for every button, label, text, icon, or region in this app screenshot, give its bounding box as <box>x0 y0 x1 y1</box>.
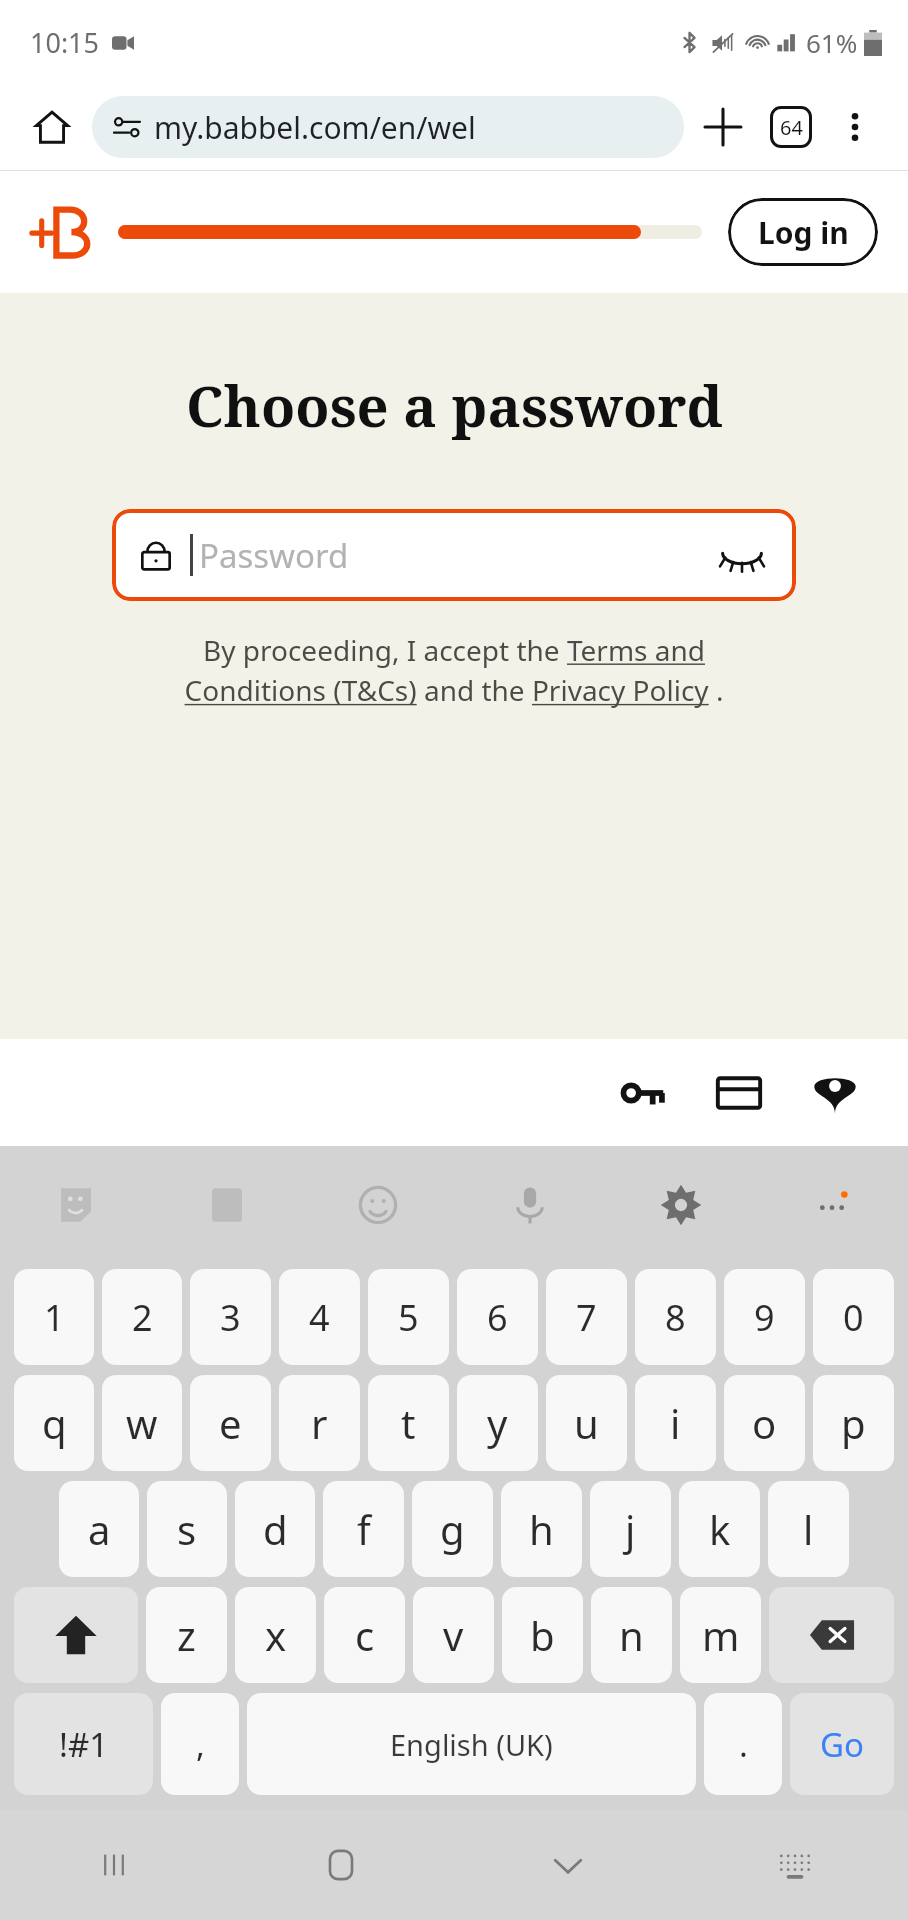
button[interactable]: 3 <box>190 1269 271 1365</box>
button[interactable]: GIF <box>191 1169 263 1241</box>
button[interactable]: l <box>768 1481 849 1577</box>
staticText: 7 <box>576 1293 597 1342</box>
button[interactable]: 9 <box>724 1269 805 1365</box>
button[interactable]: 8 <box>635 1269 716 1365</box>
staticText: . <box>739 1722 748 1767</box>
button[interactable]: 5 <box>368 1269 449 1365</box>
button[interactable]: New tab <box>692 96 754 158</box>
button[interactable]: Backspace <box>769 1587 894 1683</box>
staticText: m <box>702 1608 740 1662</box>
staticText: c <box>355 1608 375 1662</box>
staticText: v <box>443 1608 464 1662</box>
button[interactable]: a <box>59 1481 139 1577</box>
button[interactable]: 1 <box>14 1269 94 1365</box>
button[interactable]: e <box>190 1375 271 1471</box>
staticText: n <box>619 1608 644 1662</box>
button[interactable]: 7 <box>546 1269 627 1365</box>
staticText: l <box>803 1502 814 1556</box>
button[interactable]: m <box>680 1587 761 1683</box>
button[interactable]: j <box>590 1481 671 1577</box>
button[interactable]: Switch keyboard <box>681 1810 908 1920</box>
staticText: u <box>574 1396 599 1450</box>
button[interactable]: Recent apps <box>0 1810 227 1920</box>
staticText: w <box>126 1396 158 1450</box>
staticText: x <box>265 1608 287 1662</box>
staticText: !#1 <box>59 1722 109 1767</box>
staticText: r <box>311 1396 328 1450</box>
button[interactable]: g <box>412 1481 493 1577</box>
button[interactable]: Show password <box>714 527 770 583</box>
staticText: e <box>219 1396 242 1450</box>
staticText: z <box>177 1608 196 1662</box>
staticText: q <box>42 1396 67 1450</box>
button[interactable]: Voice input <box>494 1169 566 1241</box>
button[interactable]: English (UK) <box>247 1693 696 1795</box>
button[interactable]: s <box>147 1481 227 1577</box>
staticText: Go <box>820 1722 864 1767</box>
button[interactable]: h <box>501 1481 582 1577</box>
button[interactable]: f <box>323 1481 404 1577</box>
button[interactable]: . <box>704 1693 782 1795</box>
button[interactable]: v <box>413 1587 494 1683</box>
button[interactable]: x <box>235 1587 316 1683</box>
staticText: k <box>709 1502 731 1556</box>
button[interactable]: Emoji <box>342 1169 414 1241</box>
button[interactable]: p <box>813 1375 894 1471</box>
staticText: t <box>401 1396 416 1450</box>
button[interactable]: Home <box>227 1810 454 1920</box>
button[interactable]: my.babbel.com/en/wel <box>92 96 684 158</box>
button[interactable]: u <box>546 1375 627 1471</box>
staticText: 6 <box>487 1293 508 1342</box>
button[interactable]: More <box>796 1169 868 1241</box>
button[interactable]: q <box>14 1375 94 1471</box>
staticText: 4 <box>309 1293 330 1342</box>
button[interactable]: Addresses <box>792 1050 878 1136</box>
button[interactable]: Stickers <box>40 1169 112 1241</box>
button[interactable]: By proceeding, I accept the Terms and Co… <box>150 631 758 710</box>
button[interactable]: Home <box>24 99 80 155</box>
staticText: d <box>263 1502 288 1556</box>
button[interactable]: Passwords <box>600 1050 686 1136</box>
staticText: 1 <box>44 1293 65 1342</box>
staticText: 8 <box>665 1293 686 1342</box>
staticText: English (UK) <box>390 1725 553 1764</box>
button[interactable]: i <box>635 1375 716 1471</box>
button[interactable]: Password <box>112 509 796 601</box>
button[interactable]: Hide keyboard <box>454 1810 681 1920</box>
button[interactable]: k <box>679 1481 760 1577</box>
button[interactable]: Shift <box>14 1587 138 1683</box>
staticText: 2 <box>132 1293 153 1342</box>
button[interactable]: 6 <box>457 1269 538 1365</box>
staticText: 3 <box>220 1293 241 1342</box>
button[interactable]: Log in <box>728 198 878 266</box>
staticText: 5 <box>398 1293 419 1342</box>
button[interactable]: More options <box>826 98 884 156</box>
button[interactable]: c <box>324 1587 405 1683</box>
button[interactable]: z <box>146 1587 227 1683</box>
staticText: a <box>88 1502 111 1556</box>
staticText: b <box>530 1608 555 1662</box>
button[interactable]: Go <box>790 1693 894 1795</box>
button[interactable]: b <box>502 1587 583 1683</box>
button[interactable]: Tabs, 64 open <box>760 96 822 158</box>
button[interactable]: w <box>102 1375 182 1471</box>
button[interactable]: !#1 <box>14 1693 153 1795</box>
button[interactable]: y <box>457 1375 538 1471</box>
staticText: h <box>529 1502 554 1556</box>
button[interactable]: Payment methods <box>696 1050 782 1136</box>
button[interactable]: d <box>235 1481 315 1577</box>
button[interactable]: , <box>161 1693 239 1795</box>
staticText: 61% <box>806 25 858 60</box>
button[interactable]: o <box>724 1375 805 1471</box>
button[interactable]: 4 <box>279 1269 360 1365</box>
button[interactable]: t <box>368 1375 449 1471</box>
button[interactable]: r <box>279 1375 360 1471</box>
button[interactable]: Keyboard settings <box>645 1169 717 1241</box>
button[interactable]: 2 <box>102 1269 182 1365</box>
button[interactable]: 0 <box>813 1269 894 1365</box>
staticText: p <box>841 1396 866 1450</box>
staticText: 10:15 <box>30 24 100 61</box>
staticText: 9 <box>754 1293 775 1342</box>
button[interactable]: n <box>591 1587 672 1683</box>
staticText: o <box>752 1396 777 1450</box>
